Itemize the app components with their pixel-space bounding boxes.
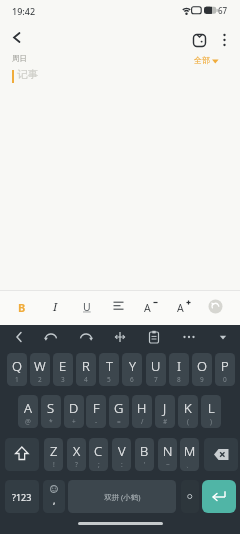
button[interactable]: M bbox=[180, 438, 199, 471]
staticText: @ bbox=[25, 417, 31, 426]
button[interactable]: C bbox=[89, 438, 108, 471]
staticText: 67 bbox=[218, 5, 228, 16]
staticText: A bbox=[177, 301, 184, 315]
button[interactable] bbox=[112, 329, 128, 345]
staticText: L bbox=[208, 399, 215, 417]
button[interactable]: K bbox=[178, 395, 198, 428]
button[interactable] bbox=[5, 438, 39, 471]
button[interactable]: L bbox=[201, 395, 221, 428]
button[interactable]: S bbox=[41, 395, 61, 428]
staticText: ? bbox=[75, 460, 78, 469]
staticText: J bbox=[163, 399, 167, 417]
button[interactable]: Y bbox=[122, 353, 142, 386]
button[interactable]: B bbox=[135, 438, 154, 471]
button[interactable]: U bbox=[79, 298, 95, 316]
button[interactable] bbox=[202, 480, 236, 513]
staticText: , bbox=[53, 494, 56, 506]
staticText: A bbox=[24, 399, 32, 417]
staticText: ) bbox=[210, 417, 212, 426]
button[interactable]: Z bbox=[44, 438, 63, 471]
button[interactable] bbox=[146, 329, 162, 345]
staticText: 双拼 (小鹤) bbox=[104, 492, 141, 502]
button[interactable]: A bbox=[18, 395, 38, 428]
button[interactable] bbox=[78, 329, 94, 345]
staticText: 8 bbox=[177, 375, 181, 384]
staticText: ' bbox=[144, 460, 146, 469]
button[interactable] bbox=[204, 438, 238, 471]
staticText: H bbox=[137, 399, 147, 417]
button[interactable]: , bbox=[43, 480, 65, 513]
staticText: R bbox=[82, 357, 90, 375]
button[interactable] bbox=[43, 329, 59, 345]
button[interactable]: 双拼 (小鹤) bbox=[68, 480, 176, 513]
button[interactable]: T bbox=[99, 353, 119, 386]
staticText: ; bbox=[98, 460, 100, 469]
staticText: X bbox=[73, 442, 81, 460]
button[interactable]: ?123 bbox=[5, 480, 39, 513]
staticText: U bbox=[83, 300, 91, 314]
button[interactable]: X bbox=[67, 438, 86, 471]
button[interactable]: B bbox=[14, 298, 30, 316]
staticText: ~ bbox=[166, 460, 170, 469]
button[interactable]: U bbox=[146, 353, 166, 386]
staticText: O bbox=[197, 357, 207, 375]
button[interactable] bbox=[181, 329, 197, 345]
staticText: ! bbox=[53, 460, 55, 469]
staticText: Z bbox=[50, 442, 58, 460]
staticText: K bbox=[184, 399, 192, 417]
staticText: : bbox=[121, 460, 123, 469]
staticText: N bbox=[163, 442, 173, 460]
staticText: * bbox=[49, 417, 53, 426]
button[interactable] bbox=[220, 32, 229, 48]
button[interactable]: O bbox=[192, 353, 212, 386]
staticText: B bbox=[140, 442, 149, 460]
button[interactable]: A bbox=[176, 298, 192, 316]
button[interactable]: I bbox=[47, 298, 63, 316]
button[interactable]: E bbox=[53, 353, 73, 386]
button[interactable]: N bbox=[158, 438, 177, 471]
staticText: 1 bbox=[15, 375, 19, 384]
staticText: # bbox=[163, 417, 168, 426]
button[interactable] bbox=[113, 300, 124, 313]
staticText: 19:42 bbox=[12, 5, 36, 17]
staticText: 6 bbox=[130, 375, 134, 384]
button[interactable] bbox=[192, 32, 208, 48]
button[interactable]: P bbox=[215, 353, 235, 386]
staticText: 7 bbox=[154, 375, 158, 384]
button[interactable]: Q bbox=[7, 353, 27, 386]
staticText: M bbox=[184, 442, 196, 460]
button[interactable]: H bbox=[132, 395, 152, 428]
staticText: D bbox=[69, 399, 79, 417]
staticText: 全部 bbox=[194, 55, 210, 65]
staticText: A bbox=[144, 301, 151, 315]
button[interactable]: R bbox=[76, 353, 96, 386]
button[interactable]: G bbox=[109, 395, 129, 428]
button[interactable] bbox=[215, 329, 231, 345]
button[interactable]: J bbox=[155, 395, 175, 428]
button[interactable] bbox=[204, 6, 218, 15]
button[interactable]: 全部 bbox=[192, 54, 230, 68]
staticText: 5 bbox=[107, 375, 111, 384]
button[interactable]: F bbox=[86, 395, 106, 428]
button[interactable] bbox=[181, 5, 192, 16]
staticText: ( bbox=[187, 417, 189, 426]
staticText: 0 bbox=[223, 375, 227, 384]
button[interactable] bbox=[208, 299, 223, 314]
button[interactable]: D bbox=[64, 395, 84, 428]
staticText: 9 bbox=[200, 375, 204, 384]
button[interactable] bbox=[191, 6, 202, 15]
button[interactable]: W bbox=[30, 353, 50, 386]
staticText: 、 bbox=[186, 461, 193, 469]
staticText: ?123 bbox=[12, 491, 32, 503]
staticText: B bbox=[18, 300, 26, 315]
button[interactable]: A bbox=[143, 298, 159, 316]
staticText: C bbox=[94, 442, 103, 460]
button[interactable] bbox=[11, 329, 27, 345]
staticText: P bbox=[221, 357, 229, 375]
button[interactable]: I bbox=[169, 353, 189, 386]
staticText: F bbox=[93, 399, 100, 417]
button[interactable] bbox=[10, 30, 24, 45]
staticText: 2 bbox=[38, 375, 42, 384]
button[interactable]: V bbox=[112, 438, 131, 471]
button[interactable] bbox=[181, 480, 199, 513]
